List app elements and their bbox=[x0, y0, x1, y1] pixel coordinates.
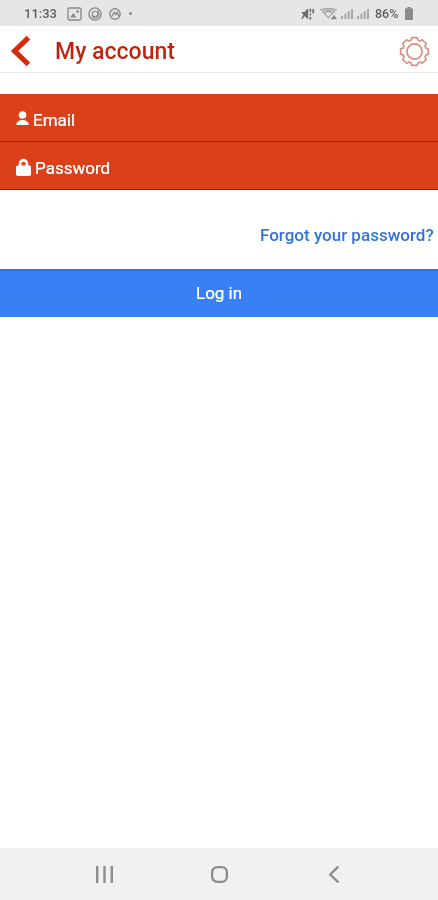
button[interactable]: Forgot your password? bbox=[250, 215, 438, 255]
staticText: Forgot your password? bbox=[260, 225, 434, 245]
button[interactable]: Back bbox=[305, 851, 363, 897]
staticText: 11:33 bbox=[24, 6, 58, 21]
button[interactable]: Home bbox=[190, 851, 248, 897]
button[interactable]: Recent apps bbox=[75, 851, 133, 897]
button[interactable]: Settings bbox=[391, 28, 437, 74]
button[interactable]: Back bbox=[0, 28, 42, 74]
button[interactable]: Log in bbox=[0, 269, 438, 317]
staticText: Log in bbox=[196, 283, 243, 303]
staticText: My account bbox=[55, 38, 175, 65]
staticText: Password bbox=[35, 158, 111, 178]
button[interactable]: Email bbox=[0, 94, 438, 141]
staticText: 86% bbox=[375, 6, 399, 21]
button[interactable]: Password bbox=[0, 142, 438, 189]
staticText: Email bbox=[33, 110, 76, 130]
